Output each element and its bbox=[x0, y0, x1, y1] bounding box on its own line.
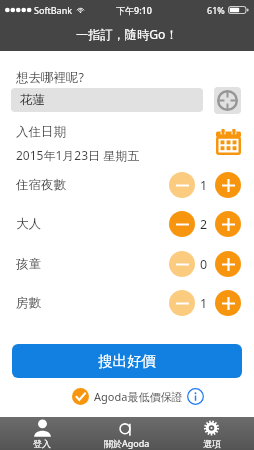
button[interactable]: Use current location bbox=[214, 87, 241, 114]
button[interactable]: Decrease 房數 bbox=[169, 290, 195, 316]
button[interactable]: 選項 bbox=[169, 417, 254, 450]
staticText: 下午9:10 bbox=[116, 4, 152, 16]
button[interactable]: Increase 大人 bbox=[215, 211, 241, 237]
staticText: 想去哪裡呢? bbox=[16, 69, 84, 86]
staticText: 入住日期 bbox=[16, 124, 66, 140]
staticText: 2015年1月23日 星期五 bbox=[16, 147, 140, 163]
staticText: 0 bbox=[200, 256, 208, 273]
staticText: 1 bbox=[200, 177, 208, 194]
staticText: 房數 bbox=[16, 295, 41, 311]
staticText: 孩童 bbox=[16, 256, 41, 272]
button[interactable]: 花蓮 bbox=[11, 88, 203, 112]
button[interactable]: Pick date bbox=[215, 128, 241, 155]
staticText: 搜出好價 bbox=[98, 352, 156, 370]
staticText: Agoda最低價保證 bbox=[94, 389, 183, 404]
button[interactable]: Decrease 住宿夜數 bbox=[169, 172, 195, 198]
button[interactable]: Decrease 大人 bbox=[169, 211, 195, 237]
staticText: 1 bbox=[200, 295, 208, 312]
button[interactable]: Increase 孩童 bbox=[215, 251, 241, 277]
staticText: 大人 bbox=[16, 216, 41, 232]
button[interactable]: 搜出好價 bbox=[12, 344, 242, 378]
button[interactable]: 關於Agoda bbox=[84, 417, 169, 450]
staticText: 住宿夜數 bbox=[16, 177, 66, 193]
button[interactable]: Decrease 孩童 bbox=[169, 251, 195, 277]
button[interactable]: Increase 住宿夜數 bbox=[215, 172, 241, 198]
staticText: 關於Agoda bbox=[104, 437, 150, 449]
staticText: 61% bbox=[207, 4, 225, 16]
staticText: 選項 bbox=[203, 438, 221, 449]
staticText: 一指訂，隨時Go！ bbox=[76, 26, 178, 43]
button[interactable]: More information bbox=[187, 388, 204, 405]
staticText: 花蓮 bbox=[20, 92, 45, 108]
button[interactable]: 登入 bbox=[0, 417, 84, 450]
button[interactable]: Increase 房數 bbox=[215, 290, 241, 316]
staticText: SoftBank bbox=[34, 4, 72, 16]
staticText: 登入 bbox=[33, 438, 51, 449]
staticText: 2 bbox=[200, 216, 208, 233]
